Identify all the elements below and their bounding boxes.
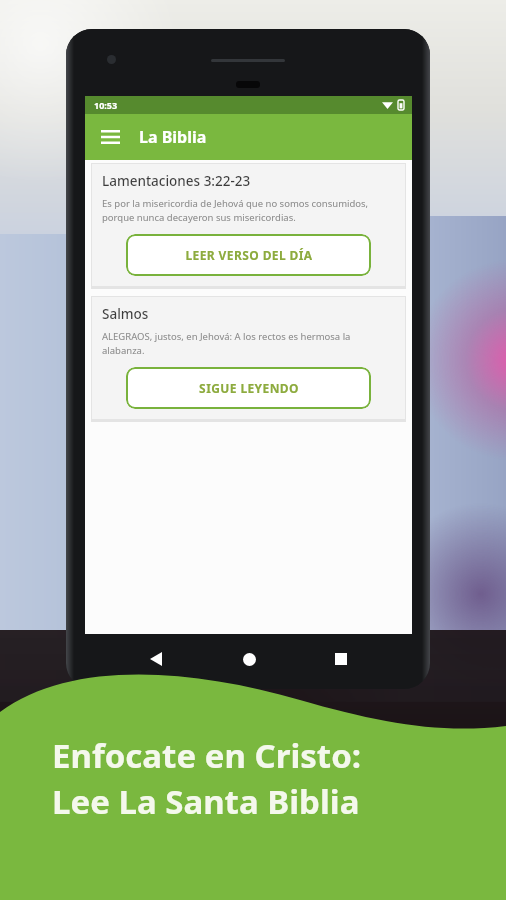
button[interactable]: LEER VERSO DEL DÍA: [126, 234, 371, 276]
staticText: Lamentaciones 3:22-23: [102, 172, 251, 190]
staticText: SIGUE LEYENDO: [199, 380, 299, 396]
staticText: ALEGRAOS, justos, en Jehová: A los recto…: [102, 330, 395, 357]
staticText: Lee La Santa Biblia: [52, 779, 360, 824]
button[interactable]: SIGUE LEYENDO: [126, 367, 371, 409]
staticText: La Biblia: [139, 126, 207, 148]
staticText: Es por la misericordia de Jehová que no …: [102, 197, 395, 224]
staticText: LEER VERSO DEL DÍA: [185, 247, 313, 263]
button[interactable]: Back: [134, 637, 178, 681]
staticText: Enfocate en Cristo:: [52, 733, 362, 778]
button[interactable]: Open navigation menu: [93, 120, 127, 154]
button[interactable]: Recent apps: [319, 637, 363, 681]
staticText: Salmos: [102, 305, 149, 323]
staticText: 10:53: [94, 99, 118, 111]
button[interactable]: Home: [227, 637, 271, 681]
